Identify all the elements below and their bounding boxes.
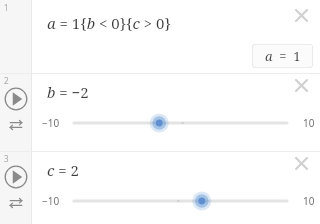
button[interactable]: Change step direction [7, 116, 25, 134]
button[interactable]: 1 [0, 0, 320, 73]
staticText: −10 [42, 194, 60, 208]
staticText: a = 1 [265, 47, 301, 65]
button[interactable]: Slider [74, 190, 287, 212]
staticText: 3 [4, 153, 9, 164]
staticText: 2 [4, 75, 9, 86]
staticText: 1 [4, 2, 9, 13]
staticText: b = −2 [47, 82, 89, 102]
button[interactable]: Play animation [4, 165, 28, 189]
button[interactable]: b = −2 [32, 74, 320, 110]
button[interactable]: Delete expression [290, 152, 312, 174]
staticText: 10 [303, 194, 315, 208]
button[interactable]: Change step direction [7, 194, 25, 212]
staticText: c = 2 [47, 160, 79, 180]
staticText: −10 [42, 116, 60, 130]
button[interactable]: Slider [74, 112, 287, 134]
button[interactable]: Delete expression [290, 4, 312, 26]
staticText: 10 [303, 116, 315, 130]
button[interactable]: Delete expression [290, 74, 312, 96]
staticText: a = 1{b < 0}{c > 0} [47, 13, 171, 33]
button[interactable]: c = 2 [32, 152, 320, 188]
button[interactable]: Play animation [4, 87, 28, 111]
button[interactable]: a = 1 [252, 44, 313, 68]
